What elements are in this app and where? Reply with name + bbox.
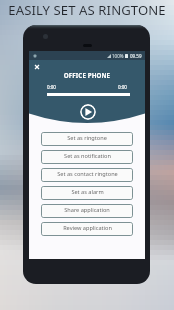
button[interactable]: Share application [41, 204, 133, 218]
staticText: Share application [64, 206, 110, 214]
button[interactable]: Set as ringtone [41, 132, 133, 146]
staticText: Set as notification [64, 152, 111, 160]
button[interactable]: Set as alarm [41, 186, 133, 200]
staticText: 0:00 [47, 84, 56, 90]
staticText: 09.59 [130, 53, 142, 59]
button[interactable]: Play [80, 104, 96, 120]
staticText: Set as contact ringtone [57, 170, 118, 178]
staticText: Review application [63, 224, 112, 232]
button[interactable]: Set as contact ringtone [41, 168, 133, 182]
staticText: OFFICE PHONE [29, 71, 145, 79]
button[interactable]: Set as notification [41, 150, 133, 164]
staticText: 100% [112, 53, 124, 59]
staticText: EASILY SET AS RINGTONE [0, 1, 174, 19]
button[interactable]: Review application [41, 222, 133, 236]
staticText: 0:00 [118, 84, 127, 90]
staticText: Set as ringtone [67, 134, 107, 142]
button[interactable]: Close [31, 61, 43, 73]
staticText: Set as alarm [71, 188, 104, 196]
